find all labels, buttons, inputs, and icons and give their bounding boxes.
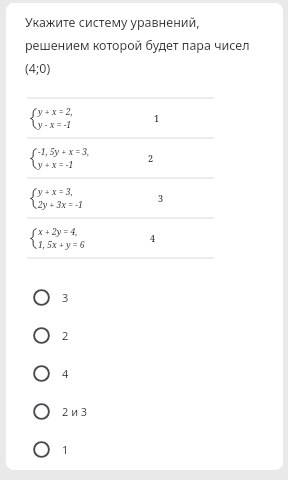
button[interactable]: 1 (30, 430, 268, 468)
staticText: x + 2y = 4, (38, 226, 78, 238)
button[interactable]: 4 (30, 354, 268, 392)
staticText: 4 (62, 366, 69, 381)
staticText: 1 (154, 112, 160, 124)
staticText: Укажите систему уравнений, решением кото… (25, 14, 266, 77)
staticText: 2 и 3 (62, 404, 88, 419)
staticText: y − x = −1 (38, 119, 72, 131)
button[interactable]: 3 (30, 278, 268, 316)
staticText: 3 (158, 192, 164, 204)
staticText: y + x = 3, (38, 186, 73, 198)
button[interactable]: 2 (30, 316, 268, 354)
staticText: y + x = 2, (38, 106, 73, 118)
staticText: 2 (62, 328, 69, 343)
button[interactable]: 2 и 3 (30, 392, 268, 430)
staticText: 2y + 3x = −1 (38, 199, 83, 211)
staticText: 1 (62, 442, 69, 457)
staticText: 3 (62, 290, 69, 305)
staticText: y + x = −1 (38, 159, 74, 171)
staticText: 1, 5x + y = 6 (38, 239, 85, 251)
staticText: 2 (148, 152, 154, 164)
other: Question card (5, 2, 284, 471)
staticText: −1, 5y + x = 3, (38, 146, 90, 158)
staticText: 4 (150, 232, 156, 244)
